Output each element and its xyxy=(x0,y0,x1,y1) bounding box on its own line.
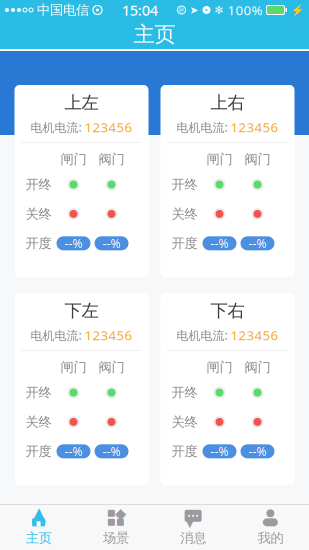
staticText: 关终 xyxy=(25,206,51,222)
staticText: 阀门 xyxy=(98,151,124,167)
staticText: 100% xyxy=(227,1,262,19)
staticText: --% xyxy=(64,235,82,251)
staticText: 中国电信 xyxy=(37,2,89,18)
staticText: 15:04 xyxy=(122,0,158,20)
staticText: 闸门 xyxy=(206,359,232,375)
button[interactable]: ▼ xyxy=(154,503,232,550)
staticText: 闸门 xyxy=(60,151,86,167)
staticText: ⚡ xyxy=(291,4,304,16)
staticText: 开度 xyxy=(25,235,51,251)
button[interactable]: ▲ xyxy=(0,503,77,550)
staticText: 上右 xyxy=(210,92,244,113)
staticText: --% xyxy=(248,443,266,459)
staticText: ▲ xyxy=(32,503,46,524)
staticText: 电机电流: xyxy=(30,327,81,343)
staticText: 闸门 xyxy=(60,359,86,375)
staticText: 123456 xyxy=(230,326,278,344)
staticText: --% xyxy=(102,443,120,459)
staticText: 123456 xyxy=(84,326,132,344)
button[interactable]: --% xyxy=(94,444,128,458)
staticText: 123456 xyxy=(84,118,132,136)
staticText: --% xyxy=(248,235,266,251)
staticText: 开终 xyxy=(171,176,197,193)
staticText: ◆ xyxy=(115,505,126,522)
staticText: 开终 xyxy=(171,384,197,401)
staticText: 场景 xyxy=(103,530,129,546)
staticText: 下左 xyxy=(64,300,98,321)
staticText: 电机电流: xyxy=(176,327,227,343)
button[interactable]: --% xyxy=(202,236,236,250)
staticText: ▼ xyxy=(186,518,193,529)
staticText: ✻ xyxy=(214,4,223,16)
staticText: 主页 xyxy=(26,530,52,546)
staticText: 开终 xyxy=(25,176,51,193)
staticText: 关终 xyxy=(25,414,51,430)
staticText: 开终 xyxy=(25,384,51,401)
staticText: ➤ xyxy=(189,4,198,16)
button[interactable]: --% xyxy=(240,236,274,250)
button[interactable]: --% xyxy=(56,236,90,250)
staticText: 消息 xyxy=(180,530,206,546)
staticText: --% xyxy=(64,443,82,459)
staticText: --% xyxy=(102,235,120,251)
staticText: 闸门 xyxy=(206,151,232,167)
button[interactable]: --% xyxy=(94,236,128,250)
staticText: 阀门 xyxy=(98,359,124,375)
staticText: 电机电流: xyxy=(176,119,227,135)
staticText: 上左 xyxy=(64,92,98,113)
button[interactable]: --% xyxy=(202,444,236,458)
staticText: 下右 xyxy=(210,300,244,321)
staticText: 开度 xyxy=(171,443,197,459)
staticText: 开度 xyxy=(25,443,51,459)
button[interactable]: --% xyxy=(240,444,274,458)
staticText: 开度 xyxy=(171,235,197,251)
button[interactable]: --% xyxy=(56,444,90,458)
staticText: 电机电流: xyxy=(30,119,81,135)
staticText: --% xyxy=(210,443,228,459)
staticText: 关终 xyxy=(171,206,197,222)
staticText: --% xyxy=(210,235,228,251)
staticText: ＠ xyxy=(178,6,185,14)
staticText: 123456 xyxy=(230,118,278,136)
staticText: 关终 xyxy=(171,414,197,430)
staticText: 阀门 xyxy=(244,359,270,375)
staticText: 我的 xyxy=(257,530,283,546)
button[interactable]: ◆ xyxy=(77,503,154,550)
button[interactable]: 我的 xyxy=(232,503,309,550)
staticText: 主页 xyxy=(133,21,175,48)
staticText: 阀门 xyxy=(244,151,270,167)
